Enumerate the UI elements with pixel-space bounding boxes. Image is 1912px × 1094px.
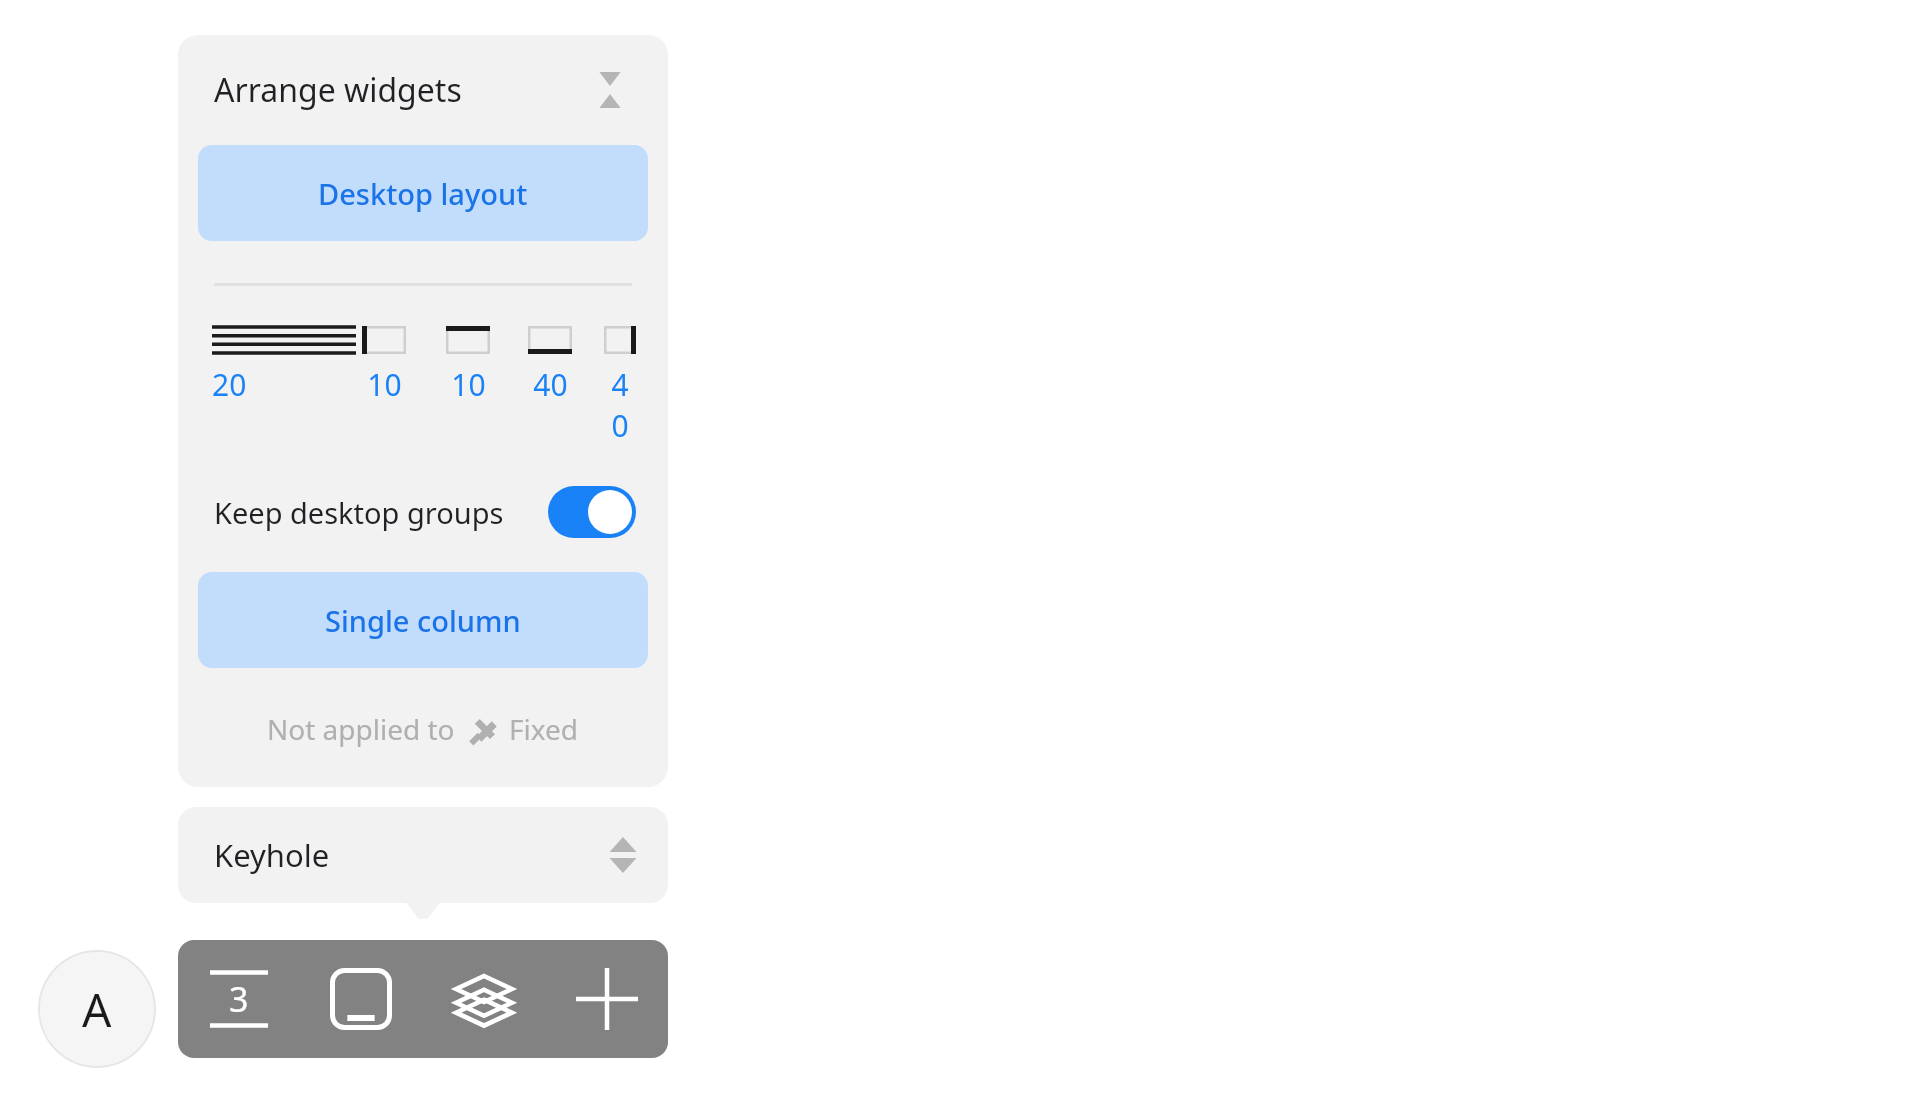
- staticText: 10: [451, 364, 486, 405]
- button[interactable]: Add: [545, 940, 668, 1058]
- staticText: Single column: [325, 601, 521, 640]
- staticText: Fixed: [509, 710, 579, 748]
- staticText: 3: [229, 976, 249, 1022]
- button[interactable]: Single column: [198, 572, 648, 668]
- button[interactable]: [356, 322, 412, 358]
- staticText: 20: [212, 364, 247, 405]
- button[interactable]: Layers: [422, 940, 545, 1058]
- button[interactable]: Account A: [38, 950, 156, 1068]
- staticText: Desktop layout: [318, 174, 528, 213]
- staticText: A: [82, 978, 112, 1041]
- button[interactable]: Keyhole: [214, 807, 638, 903]
- button[interactable]: Collapse: [582, 62, 638, 118]
- button[interactable]: [604, 322, 636, 358]
- staticText: 40: [604, 364, 636, 446]
- staticText: Not applied to: [267, 710, 455, 748]
- button[interactable]: [522, 322, 578, 358]
- staticText: Keyhole: [214, 834, 330, 876]
- button[interactable]: Desktop layout: [198, 145, 648, 241]
- button[interactable]: [212, 322, 356, 358]
- staticText: 10: [367, 364, 402, 405]
- button[interactable]: Three line spacing: [178, 940, 300, 1058]
- button[interactable]: [440, 322, 496, 358]
- staticText: Keep desktop groups: [214, 493, 504, 532]
- staticText: 40: [533, 364, 568, 405]
- button[interactable]: Keep desktop groups: [214, 480, 636, 544]
- button[interactable]: Phone view: [300, 940, 422, 1058]
- staticText: Arrange widgets: [214, 68, 462, 112]
